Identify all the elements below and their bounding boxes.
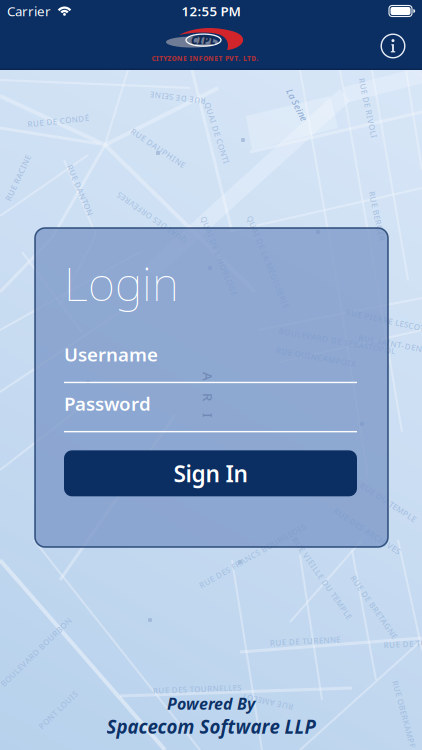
staticText: Sign In <box>173 458 247 488</box>
staticText: RUE DANTON <box>53 185 107 195</box>
staticText: RUE AMELOT <box>242 697 294 707</box>
staticText: La Seine <box>279 99 314 111</box>
staticText: Password <box>64 391 151 416</box>
staticText: RUE DES ARCHIVES <box>328 526 406 536</box>
staticText: A R I <box>185 386 231 404</box>
staticText: RUE OBERKAMPF <box>369 709 422 719</box>
staticText: RUE PIERRE LESCOT <box>345 315 422 325</box>
staticText: RUE QUINCAMPOIX <box>275 352 356 362</box>
staticText: RUE DES FRANCS BOURGEOIS <box>192 551 312 561</box>
staticText: CIPL <box>191 33 216 47</box>
staticText: RUE SAINT-DENIS <box>358 339 422 349</box>
staticText: PONT LOUIS <box>33 705 83 715</box>
staticText: RUE RACINE <box>0 173 43 183</box>
button[interactable]: Sign In <box>64 450 357 496</box>
staticText: Carrier <box>7 2 51 20</box>
staticText: Login <box>64 252 179 314</box>
staticText: RUE BERGER <box>352 211 402 221</box>
staticText: RUE DE TURENNE <box>270 636 340 646</box>
staticText: Username <box>64 342 158 367</box>
staticText: RUE DE TU <box>383 639 422 649</box>
staticText: RUE DE BRETAGNE <box>336 602 411 612</box>
button[interactable]: Info <box>376 29 410 63</box>
staticText: 12:55 PM <box>181 2 240 20</box>
staticText: RUE DES TOURNELLES <box>153 684 241 694</box>
staticText: BOULEVARD DE SÉBASTOPOL <box>278 336 396 346</box>
staticText: Spacecom Software LLP <box>106 714 315 739</box>
staticText: RUE DU TEMPLE <box>355 497 420 507</box>
textField[interactable]: Username <box>64 342 357 383</box>
staticText: RUE DE CONDÉ <box>27 116 89 126</box>
textField[interactable]: Password <box>64 391 357 432</box>
staticText: QUAI DE CONTI <box>185 128 249 138</box>
staticText: QUAI DES ORFÈVRES <box>110 213 193 223</box>
staticText: RUE VIEILLE DU TEMPLE <box>273 573 371 583</box>
staticText: BOULEVARD BOURBON <box>0 647 83 657</box>
staticText: CITYZONE INFONET PVT. LTD. <box>151 54 258 63</box>
staticText: RUE DE SEINE <box>150 93 206 103</box>
staticText: Powered By <box>167 693 255 714</box>
staticText: RUE DAUPHINE <box>126 143 190 153</box>
staticText: RUE DE RIVOLI <box>337 103 398 113</box>
